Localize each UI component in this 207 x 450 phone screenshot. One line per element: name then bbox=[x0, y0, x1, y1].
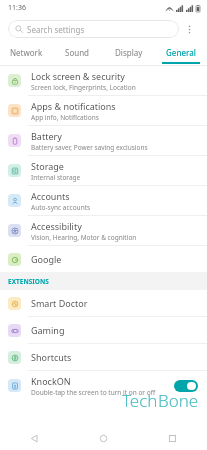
staticText: Accounts bbox=[31, 190, 70, 202]
button[interactable]: KnockON toggle bbox=[173, 378, 199, 393]
button[interactable]: More options bbox=[179, 19, 199, 39]
staticText: Search settings bbox=[27, 24, 85, 35]
staticText: Sound bbox=[65, 47, 90, 58]
button[interactable]: Back bbox=[0, 426, 69, 450]
button[interactable]: Display bbox=[103, 42, 155, 65]
button[interactable]: Sound bbox=[51, 42, 103, 65]
button[interactable]: Smart Doctor bbox=[0, 290, 207, 316]
staticText: Display bbox=[115, 47, 143, 58]
button[interactable]: Accessibility bbox=[0, 216, 207, 245]
staticText: Gaming bbox=[31, 324, 65, 336]
staticText: Smart Doctor bbox=[31, 297, 88, 309]
button[interactable]: Gaming bbox=[0, 317, 207, 343]
staticText: Shortcuts bbox=[31, 351, 72, 363]
staticText: EXTENSIONS bbox=[8, 277, 49, 286]
button[interactable]: Home bbox=[69, 426, 138, 450]
staticText: Vision, Hearing, Motor & cognition bbox=[31, 233, 137, 242]
staticText: Google bbox=[31, 253, 62, 265]
staticText: Bone bbox=[158, 389, 199, 412]
button[interactable]: Search settings bbox=[8, 20, 179, 38]
staticText: Battery saver, Power saving exclusions bbox=[31, 143, 148, 152]
staticText: Internal storage bbox=[31, 173, 81, 182]
staticText: Apps & notifications bbox=[31, 100, 116, 112]
staticText: Auto-sync accounts bbox=[31, 203, 91, 212]
staticText: Storage bbox=[31, 160, 64, 172]
staticText: Network bbox=[10, 47, 43, 58]
button[interactable]: KnockON bbox=[0, 371, 207, 400]
staticText: Double-tap the screen to turn it on or o… bbox=[31, 388, 156, 397]
button[interactable]: Lock screen & security bbox=[0, 66, 207, 95]
staticText: KnockON bbox=[31, 375, 71, 387]
staticText: Battery bbox=[31, 130, 62, 142]
staticText: Screen lock, Fingerprints, Location bbox=[31, 83, 136, 92]
staticText: 11:36 bbox=[8, 3, 26, 13]
button[interactable]: Accounts bbox=[0, 186, 207, 215]
staticText: General bbox=[166, 47, 196, 58]
button[interactable]: Network bbox=[0, 42, 51, 65]
staticText: Lock screen & security bbox=[31, 70, 125, 82]
button[interactable]: Storage bbox=[0, 156, 207, 185]
button[interactable]: General bbox=[155, 42, 207, 65]
button[interactable]: Google bbox=[0, 246, 207, 272]
button[interactable]: Apps & notifications bbox=[0, 96, 207, 125]
staticText: App info, Notifications bbox=[31, 113, 99, 122]
staticText: Tech bbox=[122, 389, 158, 412]
button[interactable]: Battery bbox=[0, 126, 207, 155]
button[interactable]: Shortcuts bbox=[0, 344, 207, 370]
button[interactable]: Recents bbox=[138, 426, 207, 450]
staticText: Accessibility bbox=[31, 220, 82, 232]
